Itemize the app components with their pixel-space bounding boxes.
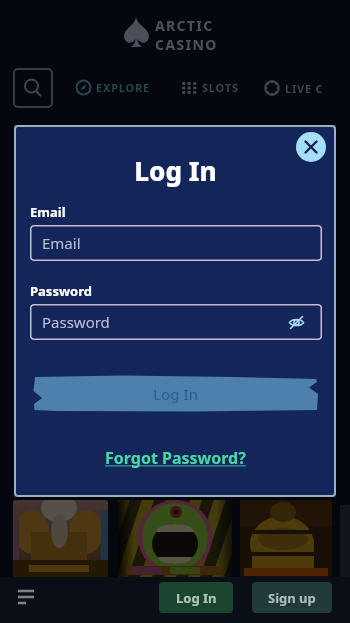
staticText: CASINO [155, 35, 218, 54]
staticText: Log In [134, 153, 217, 188]
button[interactable]: EXPLORE [76, 80, 150, 95]
button[interactable] [240, 500, 332, 577]
button[interactable]: LIVE C [264, 80, 324, 96]
button[interactable] [118, 500, 232, 577]
staticText: Email [42, 233, 81, 253]
button[interactable] [14, 585, 40, 609]
staticText: Password [30, 282, 92, 300]
staticText: ARCTIC [155, 16, 214, 35]
button[interactable] [296, 132, 326, 162]
staticText: Log In [153, 384, 199, 404]
staticText: Email [30, 203, 66, 221]
staticText: SLOTS [202, 80, 239, 95]
button[interactable]: Log In [33, 375, 319, 412]
staticText: Sign up [268, 589, 316, 607]
button[interactable]: Sign up [252, 582, 332, 613]
button[interactable]: Forgot Password? [14, 447, 336, 469]
button[interactable] [13, 500, 108, 577]
button[interactable] [14, 69, 52, 107]
button[interactable]: Password [30, 304, 322, 340]
staticText: LIVE C [285, 81, 324, 96]
staticText: Password [42, 312, 110, 332]
staticText: Forgot Password? [105, 447, 246, 469]
staticText: EXPLORE [96, 80, 150, 95]
button[interactable]: SLOTS [182, 80, 239, 95]
button[interactable]: Email [30, 225, 322, 261]
staticText: Log In [176, 589, 217, 607]
button[interactable]: Log In [159, 582, 233, 613]
